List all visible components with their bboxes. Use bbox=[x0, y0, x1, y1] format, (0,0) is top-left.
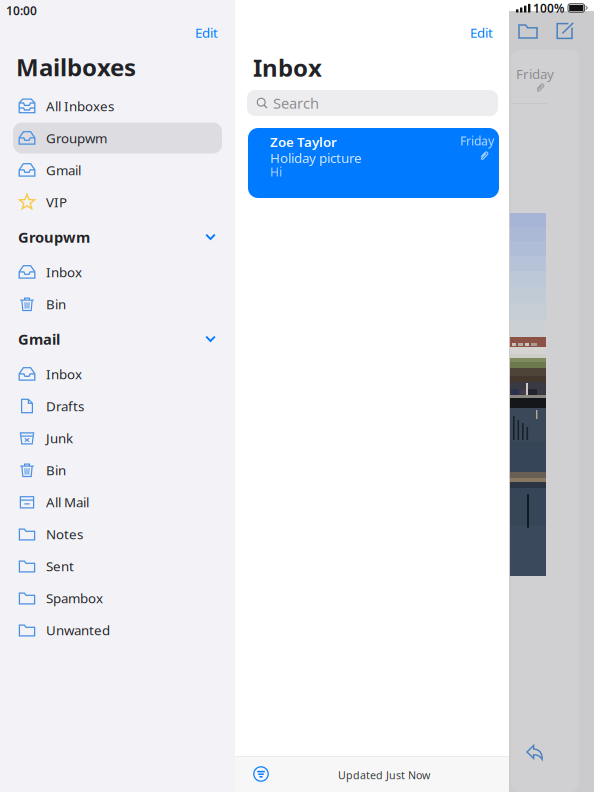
button[interactable]: Inbox bbox=[0, 358, 235, 390]
staticText: 10:00 bbox=[6, 2, 37, 18]
button[interactable]: Zoe Taylor bbox=[235, 128, 509, 198]
staticText: Junk bbox=[46, 429, 73, 447]
staticText: Gmail bbox=[46, 161, 81, 179]
button[interactable]: Bin bbox=[0, 288, 235, 320]
button[interactable]: Notes bbox=[0, 518, 235, 550]
staticText: Groupwm bbox=[18, 227, 90, 247]
button[interactable]: Junk bbox=[0, 422, 235, 454]
staticText: Notes bbox=[46, 525, 83, 543]
button[interactable]: Collapse Groupwm bbox=[201, 229, 220, 245]
button[interactable]: Gmail bbox=[0, 154, 235, 186]
staticText: Edit bbox=[195, 24, 218, 41]
button[interactable]: Collapse Gmail bbox=[201, 331, 220, 347]
button[interactable]: Groupwm bbox=[0, 122, 235, 154]
button[interactable]: Reply bbox=[526, 744, 544, 761]
button[interactable]: VIP bbox=[0, 186, 235, 218]
button[interactable]: All Inboxes bbox=[0, 90, 235, 122]
staticText: All Inboxes bbox=[46, 97, 114, 115]
button[interactable]: Edit bbox=[464, 20, 499, 45]
staticText: Inbox bbox=[46, 365, 82, 383]
staticText: Friday bbox=[516, 65, 554, 83]
staticText: Inbox bbox=[46, 263, 82, 281]
button[interactable]: Move to folder bbox=[518, 22, 538, 40]
staticText: 100% bbox=[533, 0, 565, 16]
staticText: Drafts bbox=[46, 397, 84, 415]
button[interactable]: Search bbox=[235, 90, 509, 116]
staticText: Gmail bbox=[18, 329, 60, 349]
staticText: Edit bbox=[470, 24, 493, 41]
button[interactable]: Edit bbox=[189, 20, 224, 45]
staticText: Bin bbox=[46, 461, 66, 479]
staticText: Zoe Taylor bbox=[270, 133, 337, 151]
staticText: Bin bbox=[46, 295, 66, 313]
button[interactable]: Spambox bbox=[0, 582, 235, 614]
staticText: Spambox bbox=[46, 589, 103, 607]
button[interactable]: All Mail bbox=[0, 486, 235, 518]
staticText: Sent bbox=[46, 557, 74, 575]
button[interactable]: Bin bbox=[0, 454, 235, 486]
staticText: Friday bbox=[460, 133, 494, 149]
button[interactable]: Filter bbox=[253, 766, 269, 782]
staticText: Holiday picture bbox=[270, 149, 362, 167]
staticText: Updated Just Now bbox=[338, 768, 430, 782]
staticText: Mailboxes bbox=[16, 51, 136, 83]
staticText: Unwanted bbox=[46, 621, 110, 639]
button[interactable]: Drafts bbox=[0, 390, 235, 422]
button[interactable]: Sent bbox=[0, 550, 235, 582]
button[interactable]: Unwanted bbox=[0, 614, 235, 646]
staticText: Inbox bbox=[253, 52, 322, 83]
staticText: Search bbox=[273, 93, 319, 113]
button[interactable]: Compose bbox=[556, 22, 574, 40]
staticText: All Mail bbox=[46, 493, 89, 511]
button[interactable]: Inbox bbox=[0, 256, 235, 288]
staticText: Groupwm bbox=[46, 129, 107, 147]
staticText: VIP bbox=[46, 193, 67, 211]
staticText: Hi bbox=[270, 164, 282, 180]
